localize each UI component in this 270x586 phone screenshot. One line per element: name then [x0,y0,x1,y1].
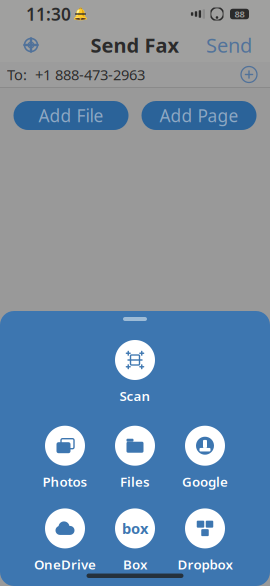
staticText: Files [120,473,150,490]
staticText: Add File [38,104,103,127]
button[interactable]: Add File [13,101,128,130]
staticText: box [122,519,148,538]
staticText: Google [182,473,228,490]
button[interactable]: Add recipient [236,61,262,87]
staticText: Add Page [159,104,238,127]
staticText: Send Fax [90,32,179,58]
staticText: 🔔 [73,7,88,21]
staticText: Dropbox [177,555,232,573]
staticText: Box [123,555,147,573]
button[interactable]: Dropbox [170,508,240,573]
button[interactable]: box [100,508,170,573]
button[interactable]: Settings [14,28,48,62]
staticText: Scan [119,387,150,405]
staticText: 11:30 [26,2,71,25]
button[interactable]: OneDrive [30,508,100,573]
button[interactable]: Google [170,426,240,490]
button[interactable]: Scan [100,340,170,405]
button[interactable]: Send [202,28,256,62]
button[interactable]: Photos [30,426,100,490]
button[interactable]: Files [100,426,170,490]
staticText: Photos [42,473,87,490]
staticText: OneDrive [34,555,96,573]
staticText: Send [206,32,252,58]
staticText: 88 [234,8,244,20]
button[interactable]: Add Page [141,101,256,130]
staticText: To: +1 888-473-2963 [7,65,145,84]
